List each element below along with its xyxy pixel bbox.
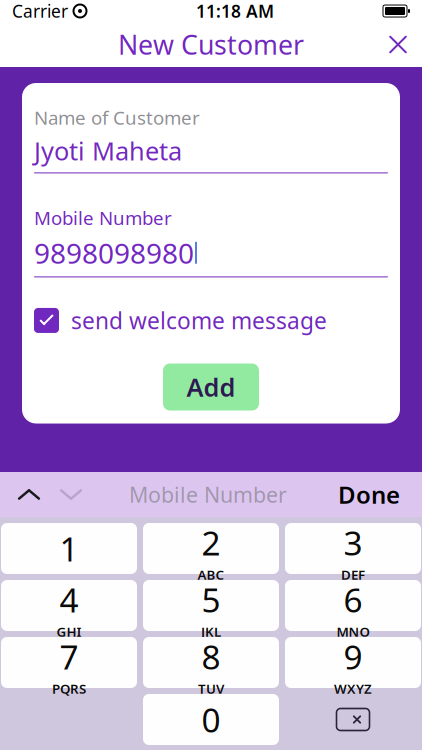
staticText: 8 [201,634,220,679]
staticText: Done [338,479,400,510]
staticText: 4 [59,577,78,622]
button[interactable]: 3 [285,523,421,574]
staticText: WXYZ [334,680,372,697]
button[interactable]: Close [374,22,422,66]
button[interactable]: 6 [285,580,421,631]
button[interactable]: Delete [285,694,421,745]
button[interactable]: Add [163,363,259,410]
staticText: Add [186,370,235,404]
button[interactable]: Next field [50,474,92,514]
button[interactable]: 7 [1,637,137,688]
staticText: 1 [59,526,78,571]
staticText: PQRS [52,680,86,697]
button[interactable]: send welcome message [34,305,388,335]
staticText: 11:18 AM [196,0,274,22]
staticText: 0 [201,697,220,742]
staticText: 5 [201,577,220,622]
staticText: ABC [197,566,224,583]
staticText: 9898098980 [34,234,194,271]
button[interactable]: 4 [1,580,137,631]
button[interactable]: 0 [143,694,279,745]
button[interactable]: 5 [143,580,279,631]
staticText: GHI [56,623,81,640]
staticText: DEF [341,566,365,583]
staticText: Mobile Number [34,205,172,230]
staticText: New Customer [118,27,304,62]
button[interactable]: 2 [143,523,279,574]
staticText: 9 [343,634,362,679]
staticText: MNO [336,623,369,640]
staticText: Jyoti Maheta [34,134,182,167]
staticText: JKL [201,623,221,640]
staticText: 2 [201,520,220,565]
staticText: 6 [343,577,362,622]
staticText: send welcome message [71,305,327,335]
staticText: TUV [198,680,224,697]
staticText: Name of Customer [34,105,200,130]
staticText: 3 [343,520,362,565]
staticText: 7 [59,634,78,679]
button[interactable]: Previous field [8,474,50,514]
button[interactable]: Done [324,474,414,514]
staticText: Mobile Number [129,480,287,509]
button[interactable]: 1 [1,523,137,574]
button[interactable]: 8 [143,637,279,688]
button[interactable]: 9 [285,637,421,688]
staticText: Carrier [12,0,68,22]
